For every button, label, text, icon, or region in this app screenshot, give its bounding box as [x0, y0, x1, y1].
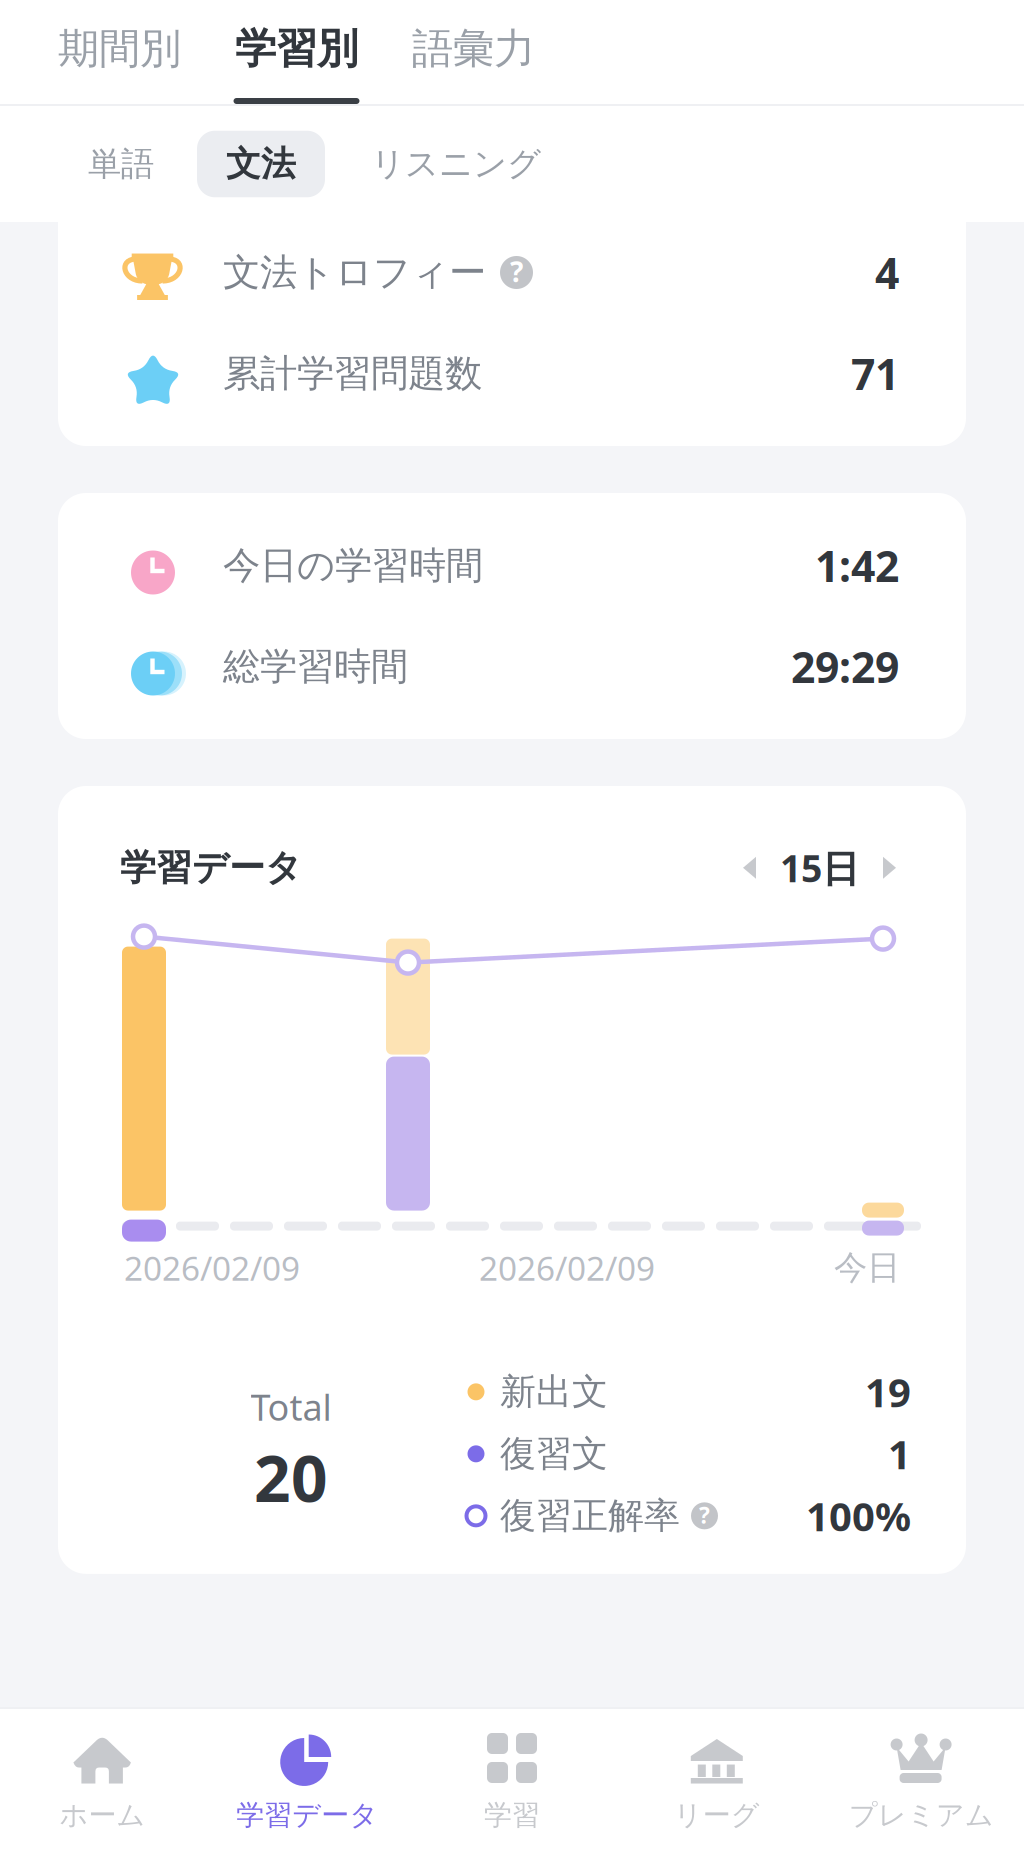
staticText: Total [250, 1383, 331, 1431]
staticText: 2026/02/09 [479, 1246, 655, 1290]
button[interactable]: 学習 [410, 1709, 614, 1859]
staticText: 1:42 [815, 537, 899, 594]
staticText: 単語 [88, 143, 154, 184]
button[interactable]: 学習データ [205, 1709, 410, 1859]
staticText: 19 [865, 1365, 911, 1418]
staticText: ホーム [59, 1798, 145, 1832]
staticText: 20 [254, 1435, 328, 1520]
staticText: 復習正解率 [500, 1494, 680, 1538]
staticText: 累計学習問題数 [223, 351, 482, 396]
staticText: 1 [888, 1427, 911, 1480]
button[interactable]: 学習別 [208, 23, 385, 104]
staticText: 15日 [780, 843, 859, 893]
staticText: 学習別 [235, 23, 358, 74]
staticText: 期間別 [58, 23, 181, 74]
staticText: 今日 [834, 1247, 900, 1288]
staticText: 学習データ [236, 1798, 378, 1832]
button[interactable]: リスニング [347, 131, 565, 196]
button[interactable]: 次の期間 [875, 855, 904, 881]
staticText: 文法 [226, 143, 296, 185]
button[interactable]: 語彙力 [385, 23, 562, 104]
button[interactable]: リーグ [614, 1709, 819, 1859]
staticText: ? [699, 1500, 710, 1530]
button[interactable]: 前の期間 [735, 855, 764, 881]
button[interactable]: プレミアム [819, 1709, 1024, 1859]
staticText: リスニング [371, 143, 541, 184]
staticText: 100% [806, 1489, 911, 1542]
button[interactable]: 期間別 [31, 23, 208, 104]
staticText: プレミアム [849, 1798, 994, 1832]
staticText: 2026/02/09 [124, 1246, 300, 1290]
staticText: 新出文 [500, 1370, 608, 1414]
staticText: 4 [875, 244, 899, 301]
staticText: リーグ [674, 1798, 760, 1832]
staticText: 71 [851, 345, 899, 402]
staticText: 総学習時間 [223, 644, 408, 689]
staticText: 学習データ [120, 846, 302, 890]
staticText: 語彙力 [412, 23, 535, 74]
staticText: 復習文 [500, 1432, 608, 1476]
staticText: 今日の学習時間 [223, 543, 483, 588]
staticText: 学習 [484, 1798, 540, 1832]
staticText: 文法トロフィー [223, 250, 486, 295]
staticText: ? [510, 253, 523, 290]
button[interactable]: 単語 [66, 131, 176, 196]
button[interactable]: 文法 [197, 131, 325, 197]
button[interactable]: ホーム [0, 1709, 205, 1859]
staticText: 29:29 [791, 638, 899, 695]
